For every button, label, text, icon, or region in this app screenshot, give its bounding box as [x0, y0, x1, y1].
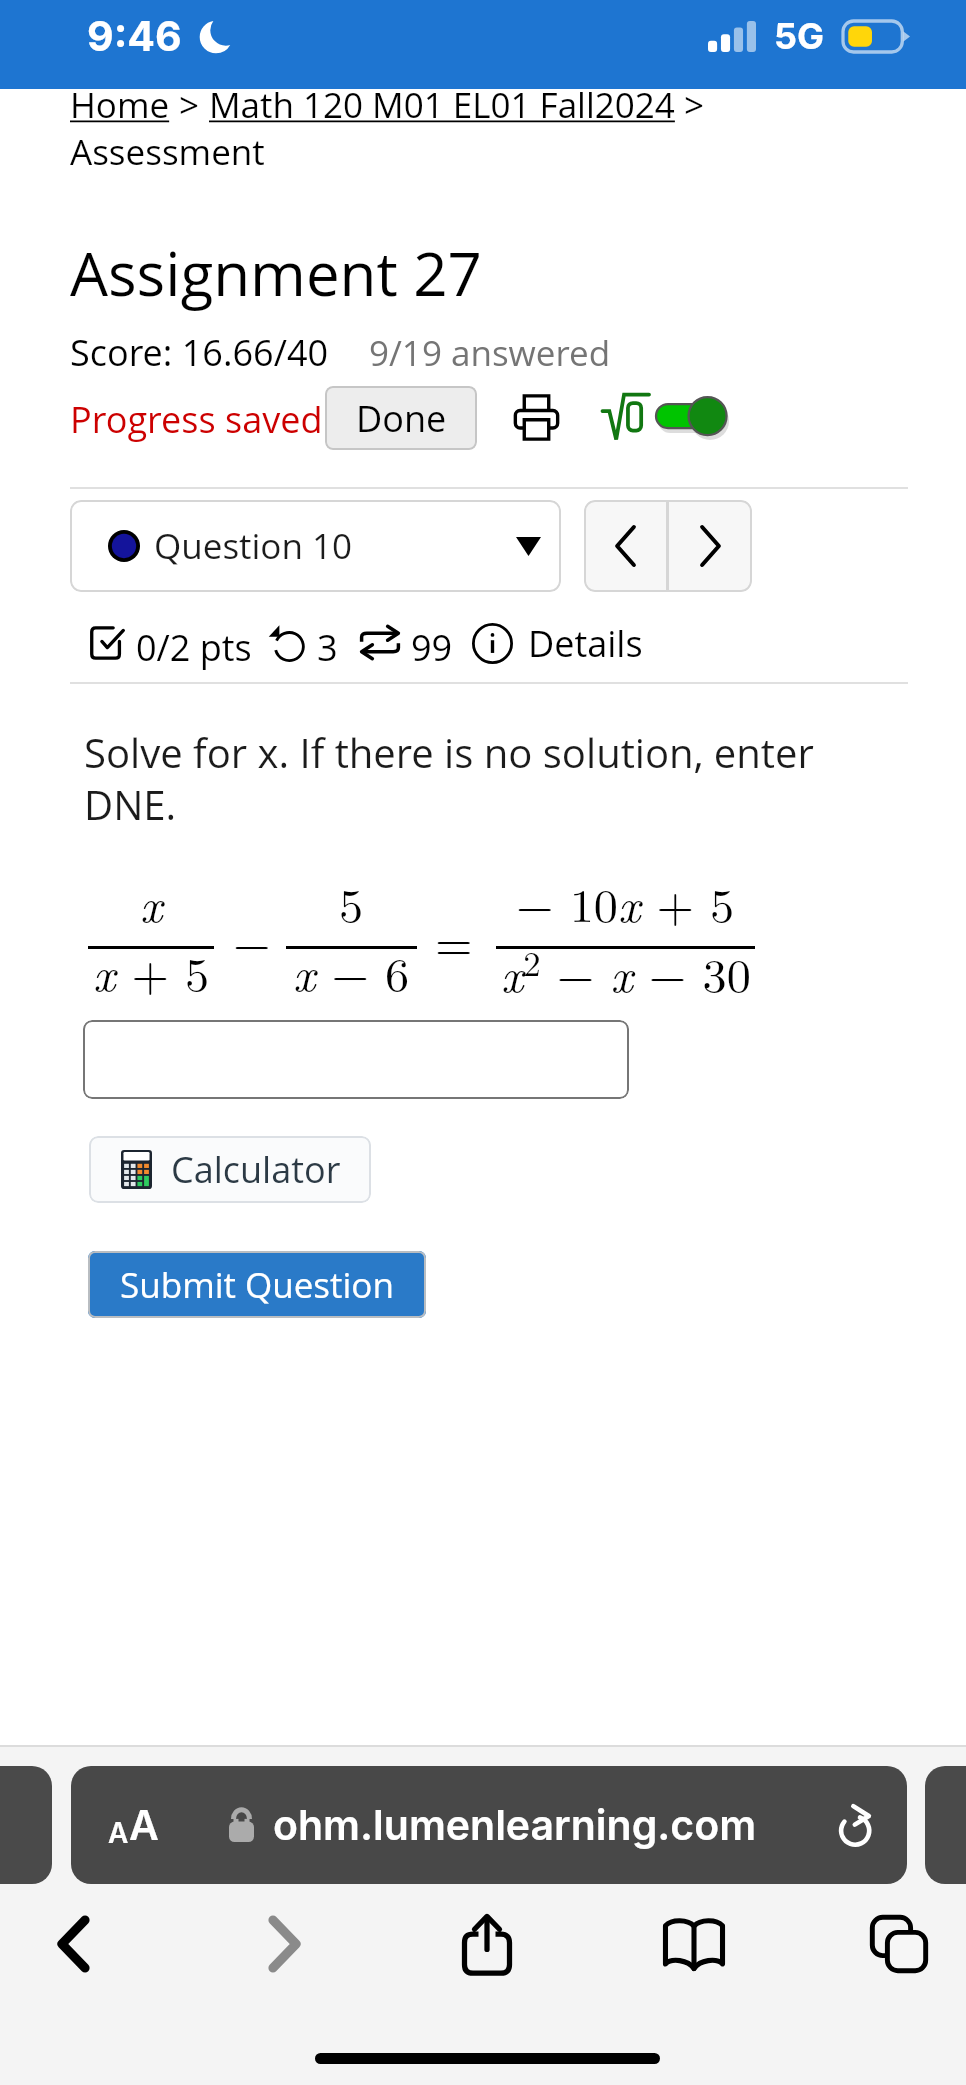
- button[interactable]: Reload: [828, 1795, 888, 1855]
- staticText: >: [675, 81, 705, 129]
- staticText: A: [129, 1800, 159, 1850]
- button[interactable]: Toggle math entry: [601, 381, 728, 453]
- staticText: Done: [356, 394, 447, 443]
- button[interactable]: Print: [505, 381, 567, 453]
- staticText: Score: 16.66/40: [70, 328, 329, 377]
- staticText: Progress saved: [70, 395, 323, 444]
- staticText: 0/2 pts: [136, 623, 252, 672]
- button[interactable]: A: [71, 1766, 907, 1884]
- staticText: x2 − x − 30: [501, 938, 751, 1006]
- staticText: − 10x + 5: [516, 869, 735, 936]
- staticText: x + 5: [93, 938, 210, 1005]
- button[interactable]: Question 10: [70, 500, 561, 592]
- staticText: =: [435, 907, 473, 974]
- staticText: 3: [317, 623, 338, 672]
- staticText: 99: [411, 623, 453, 672]
- staticText: Math 120 M01 EL01 Fall2024: [209, 81, 675, 129]
- button[interactable]: [83, 1020, 629, 1099]
- staticText: >: [170, 81, 209, 129]
- staticText: Solve for x. If there is no solution, en…: [84, 725, 814, 832]
- staticText: 9/19 answered: [369, 329, 611, 377]
- button[interactable]: Share: [434, 1900, 540, 1988]
- staticText: Calculator: [171, 1145, 341, 1194]
- staticText: x: [140, 869, 163, 936]
- button[interactable]: Calculator: [89, 1136, 371, 1203]
- button[interactable]: Done: [325, 386, 477, 450]
- staticText: Submit Question: [120, 1261, 394, 1309]
- button[interactable]: Forward: [231, 1900, 337, 1988]
- button[interactable]: Submit Question: [88, 1251, 426, 1318]
- staticText: 5: [339, 869, 364, 936]
- staticText: A: [108, 1816, 129, 1850]
- button[interactable]: Bookmarks: [641, 1900, 747, 1988]
- button[interactable]: Next question: [669, 500, 752, 592]
- staticText: Assessment: [70, 128, 265, 176]
- staticText: Home: [70, 81, 170, 129]
- staticText: 9:46: [87, 11, 182, 61]
- staticText: ohm.lumenlearning.com: [273, 1800, 757, 1850]
- staticText: Details: [528, 619, 643, 667]
- staticText: 5G: [774, 14, 825, 58]
- button[interactable]: Details: [472, 619, 643, 667]
- button[interactable]: Tabs: [846, 1900, 952, 1988]
- button[interactable]: Back: [20, 1900, 126, 1988]
- staticText: Assignment 27: [70, 232, 482, 314]
- button[interactable]: Previous question: [584, 500, 666, 592]
- staticText: Question 10: [154, 522, 353, 570]
- staticText: x − 6: [293, 938, 410, 1005]
- staticText: −: [233, 907, 271, 974]
